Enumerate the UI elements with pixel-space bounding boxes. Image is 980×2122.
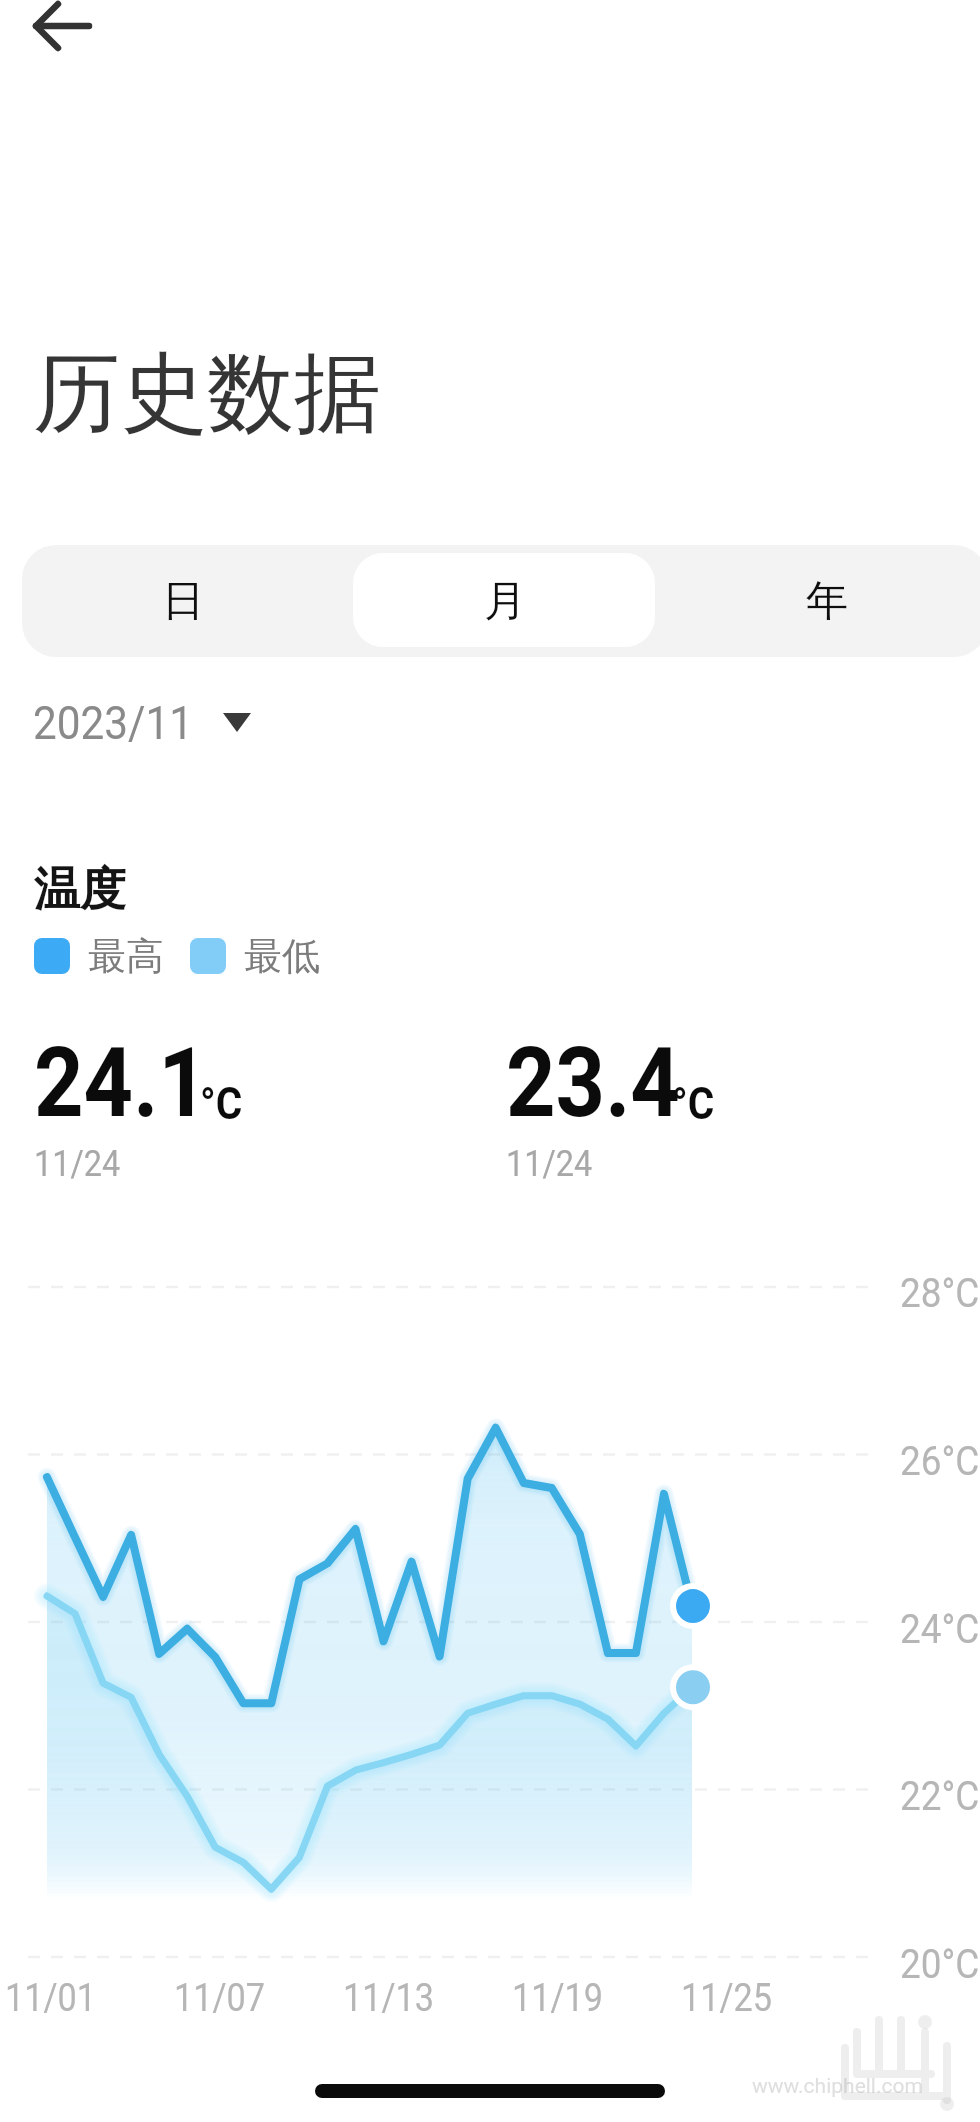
staticText: 24.1 [34,1027,209,1140]
button[interactable]: Back [0,0,124,100]
staticText: °C [672,1077,714,1130]
staticText: www.chiphell.com [752,2074,923,2099]
button[interactable]: 年 [666,545,980,657]
staticText: 最高 [88,932,164,980]
staticText: 月 [484,575,526,628]
button[interactable]: 2023/11 [33,695,251,750]
staticText: 28°C [900,1269,980,1317]
staticText: 11/24 [34,1143,120,1185]
button[interactable]: 月 [344,545,666,657]
staticText: 11/01 [5,1976,97,2021]
staticText: 11/13 [343,1976,435,2021]
staticText: 11/24 [506,1143,592,1185]
staticText: 历史数据 [33,339,381,449]
staticText: 年 [806,575,848,628]
staticText: 11/07 [174,1976,266,2021]
button[interactable]: 日 [22,545,344,657]
staticText: 11/19 [512,1976,604,2021]
staticText: 温度 [34,861,126,919]
staticText: 24°C [900,1605,980,1653]
staticText: 11/25 [681,1976,773,2021]
staticText: °C [200,1077,242,1130]
staticText: 20°C [900,1940,980,1988]
staticText: 26°C [900,1437,980,1485]
staticText: 日 [162,575,204,628]
staticText: 23.4 [506,1027,681,1140]
staticText: 最低 [244,932,320,980]
staticText: 22°C [900,1772,980,1820]
staticText: 2023/11 [33,695,193,750]
